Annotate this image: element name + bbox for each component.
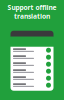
staticText: Support offline [7,3,56,12]
staticText: translation [14,12,50,21]
